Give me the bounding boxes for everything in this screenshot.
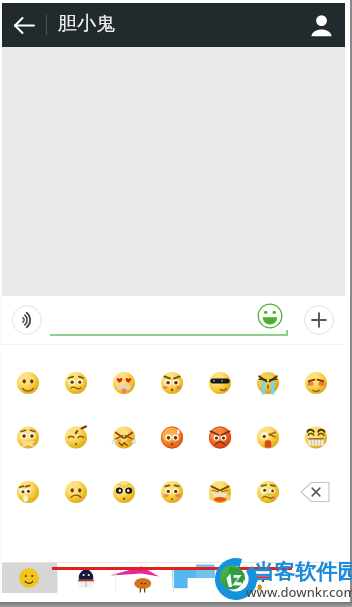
- button[interactable]: Back: [2, 3, 46, 47]
- staticText: 当客软件园: [253, 559, 352, 585]
- button[interactable]: Emoji tab: [0, 563, 57, 593]
- button[interactable]: Sticker pack: [231, 563, 289, 593]
- button[interactable]: Sticker pack: [57, 563, 115, 593]
- staticText: www.downkr.com: [246, 583, 352, 601]
- button[interactable]: Emoji keyboard: [257, 303, 283, 329]
- button[interactable]: Sticker pack: [115, 563, 173, 593]
- staticText: 胆小鬼: [58, 12, 115, 36]
- button[interactable]: More options: [304, 305, 334, 335]
- button[interactable]: Sticker pack: [173, 563, 231, 593]
- button[interactable]: Contact profile: [299, 3, 343, 47]
- button[interactable]: Voice message: [12, 305, 42, 335]
